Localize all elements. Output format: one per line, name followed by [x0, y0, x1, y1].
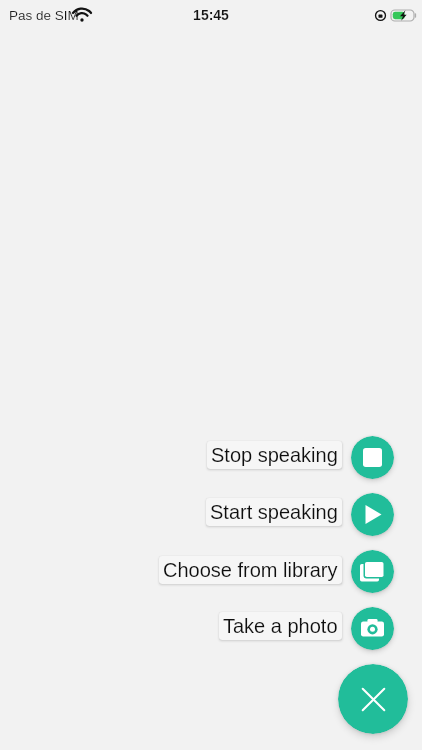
button[interactable]: Take a photo	[351, 607, 394, 650]
button[interactable]: Close menu	[338, 664, 408, 734]
staticText: 15:45	[193, 7, 229, 23]
button[interactable]: Choose from library	[351, 550, 394, 593]
button[interactable]: Stop speaking	[207, 441, 342, 469]
staticText: Choose from library	[163, 559, 338, 581]
button[interactable]: Take a photo	[219, 612, 342, 640]
button[interactable]: Start speaking	[351, 493, 394, 536]
staticText: Stop speaking	[211, 444, 338, 466]
staticText: Take a photo	[223, 615, 338, 637]
button[interactable]: Start speaking	[206, 498, 342, 526]
staticText: Start speaking	[210, 501, 338, 523]
button[interactable]: Stop speaking	[351, 436, 394, 479]
button[interactable]: Choose from library	[159, 556, 342, 584]
staticText: Pas de SIM	[9, 8, 79, 23]
